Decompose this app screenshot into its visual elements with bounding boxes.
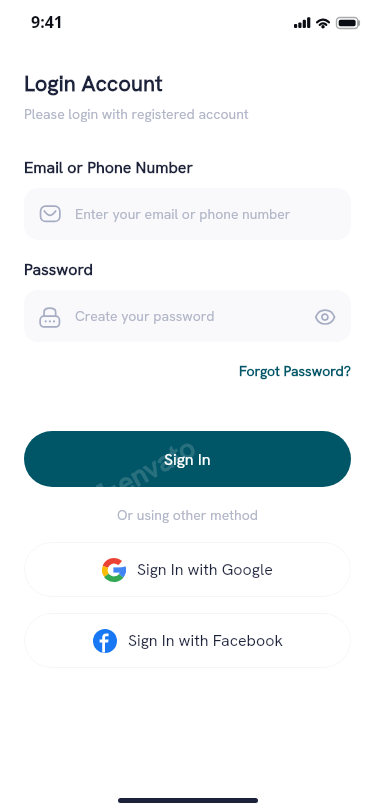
staticText: Or using other method: [0, 506, 375, 524]
staticText: envato: [110, 431, 202, 487]
button[interactable]: Show password: [315, 306, 336, 327]
button[interactable]: Sign In with Google: [24, 542, 351, 597]
staticText: Sign In with Facebook: [128, 630, 283, 651]
staticText: Email or Phone Number: [24, 157, 193, 178]
button[interactable]: Sign In with Facebook: [24, 613, 351, 668]
staticText: 9:41: [31, 11, 63, 33]
button[interactable]: Forgot Password?: [239, 362, 351, 380]
staticText: Enter your email or phone number: [75, 205, 291, 223]
staticText: Please login with registered account: [24, 105, 249, 123]
button[interactable]: envato: [24, 431, 351, 487]
staticText: Login Account: [24, 69, 163, 98]
staticText: Sign In: [164, 449, 211, 470]
button[interactable]: Enter your email or phone number: [24, 188, 351, 240]
button[interactable]: Create your password: [24, 290, 351, 342]
staticText: Forgot Password?: [239, 362, 351, 380]
staticText: Create your password: [75, 307, 215, 325]
staticText: Password: [24, 259, 93, 280]
staticText: Sign In with Google: [137, 559, 273, 580]
